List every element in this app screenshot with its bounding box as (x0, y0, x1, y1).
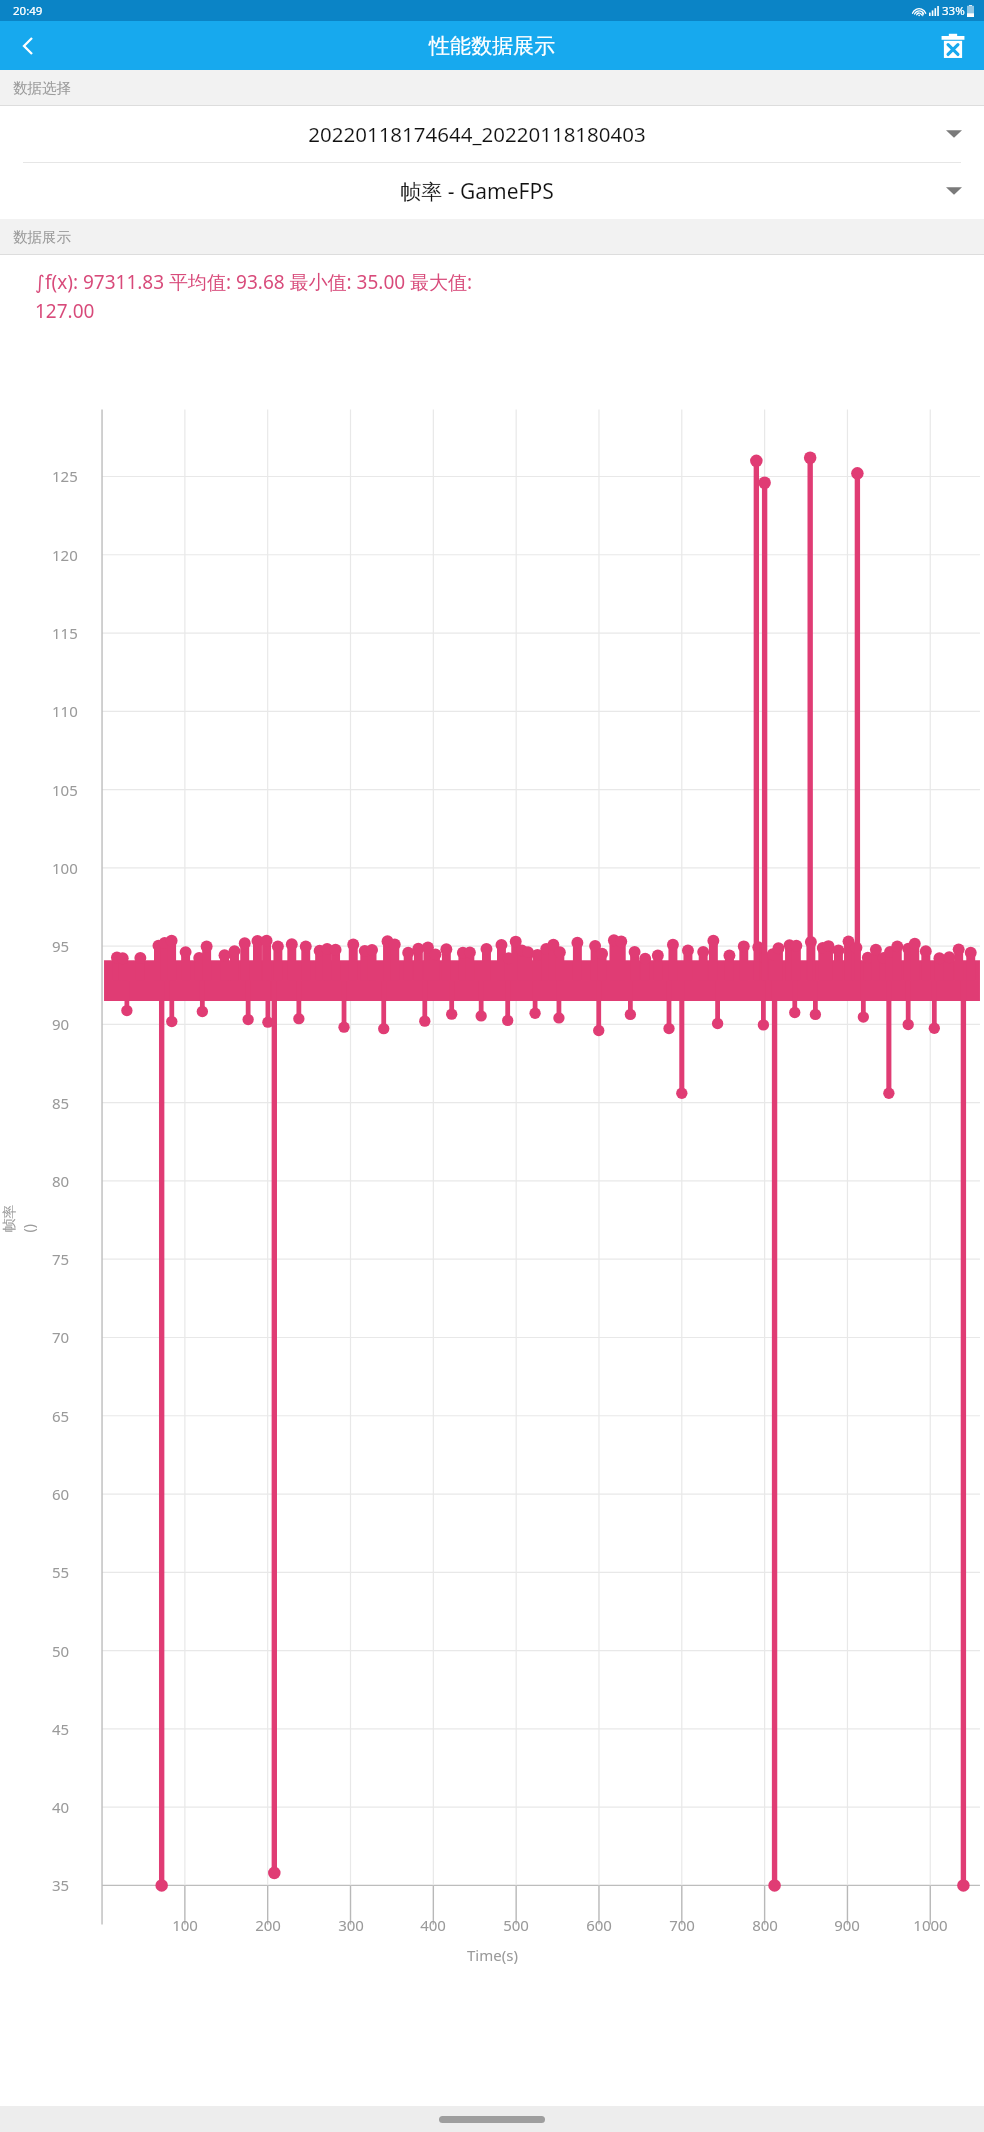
staticText: 20:49 (13, 3, 43, 19)
button[interactable]: Home (439, 2116, 545, 2123)
staticText: 数据选择 (13, 79, 71, 97)
button[interactable]: Back (8, 26, 48, 66)
staticText: 50 (52, 1641, 70, 1661)
button[interactable]: 20220118174644_20220118180403 (0, 106, 984, 162)
staticText: 数据展示 (13, 228, 71, 246)
staticText: ∫f(x): 97311.83 平均值: 93.68 最小值: 35.00 最大… (35, 269, 473, 295)
staticText: 600 (586, 1915, 612, 1935)
staticText: 55 (52, 1562, 70, 1582)
staticText: 95 (52, 936, 70, 956)
staticText: 100 (172, 1915, 198, 1935)
staticText: 200 (255, 1915, 281, 1935)
staticText: 80 (52, 1171, 70, 1191)
staticText: 60 (52, 1484, 70, 1504)
staticText: 110 (52, 701, 78, 721)
staticText: 70 (52, 1327, 70, 1347)
staticText: 35 (52, 1875, 70, 1895)
staticText: 33% (942, 3, 965, 19)
staticText: 125 (52, 466, 78, 486)
staticText: 65 (52, 1406, 70, 1426)
staticText: 800 (752, 1915, 778, 1935)
staticText: 90 (52, 1014, 70, 1034)
staticText: 20220118174644_20220118180403 (308, 120, 646, 148)
staticText: 75 (52, 1249, 70, 1269)
staticText: 300 (338, 1915, 364, 1935)
staticText: 900 (834, 1915, 860, 1935)
staticText: 帧率 - GameFPS (400, 177, 554, 206)
staticText: 115 (52, 623, 78, 643)
staticText: 700 (669, 1915, 695, 1935)
staticText: 120 (52, 545, 78, 565)
staticText: 500 (503, 1915, 529, 1935)
staticText: 400 (420, 1915, 446, 1935)
staticText: 40 (52, 1797, 70, 1817)
staticText: 1000 (913, 1915, 948, 1935)
staticText: Time(s) (467, 1945, 518, 1965)
staticText: 127.00 (35, 298, 95, 324)
staticText: 45 (52, 1719, 70, 1739)
button[interactable]: 帧率 - GameFPS (0, 163, 984, 219)
staticText: 帧率() (0, 1198, 37, 1232)
staticText: 100 (52, 858, 78, 878)
staticText: 性能数据展示 (429, 33, 555, 59)
staticText: 105 (52, 780, 78, 800)
staticText: 85 (52, 1093, 70, 1113)
button[interactable]: Delete (932, 25, 974, 67)
